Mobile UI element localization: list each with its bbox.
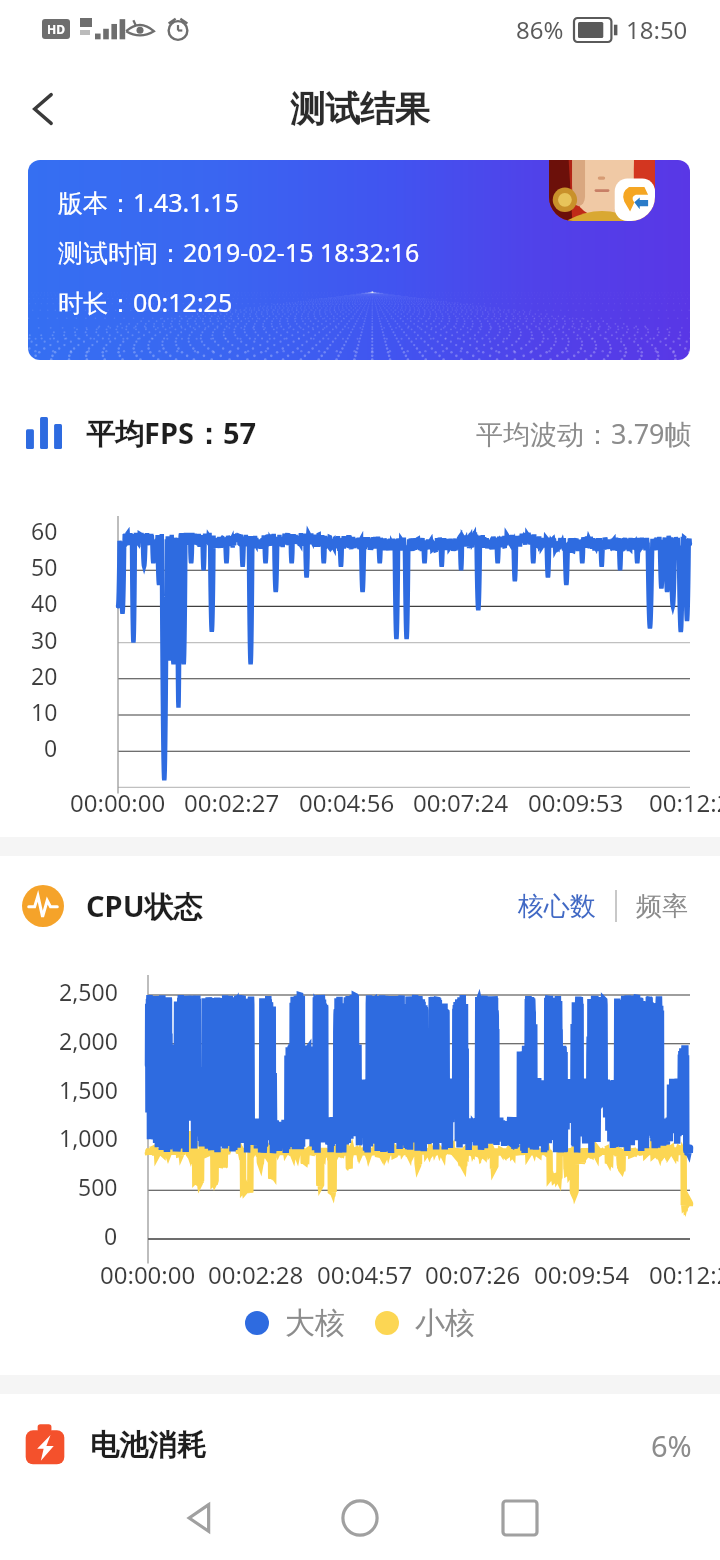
staticText: 0 (44, 732, 58, 763)
staticText: 00:09:54 (534, 1258, 630, 1291)
staticText: 00:02:27 (184, 786, 280, 819)
button[interactable]: Home (320, 1478, 400, 1558)
staticText: 版本：1.43.1.15 (58, 185, 239, 219)
staticText: 测试时间：2019-02-15 18:32:16 (58, 235, 420, 269)
staticText: CPU状态 (86, 886, 203, 926)
staticText: 6% (651, 1426, 692, 1465)
staticText: 20 (31, 660, 58, 691)
staticText: 时长：00:12:25 (58, 285, 233, 319)
staticText: 00:04:57 (317, 1258, 413, 1291)
staticText: 1,500 (59, 1074, 118, 1105)
staticText: 00:12:2 (649, 1258, 720, 1291)
staticText: 0 (104, 1220, 118, 1251)
staticText: 平均波动：3.79帧 (476, 415, 692, 452)
staticText: HD (47, 21, 65, 37)
staticText: 频率 (636, 890, 688, 923)
staticText: 1,000 (59, 1122, 118, 1153)
staticText: 00:09:53 (528, 786, 624, 819)
staticText: 00:12:2 (649, 786, 720, 819)
staticText: 10 (31, 696, 58, 727)
staticText: 小核 (415, 1304, 475, 1342)
staticText: 00:02:28 (208, 1258, 304, 1291)
staticText: 30 (31, 624, 58, 655)
staticText: 核心数 (518, 890, 596, 923)
staticText: 测试结果 (290, 87, 430, 131)
staticText: 电池消耗 (90, 1427, 206, 1464)
button[interactable]: 核心数 (514, 884, 600, 929)
staticText: 50 (31, 551, 58, 582)
button[interactable]: 频率 (632, 884, 692, 929)
staticText: 大核 (285, 1304, 345, 1342)
staticText: 500 (78, 1171, 118, 1202)
button[interactable]: Back (160, 1478, 240, 1558)
staticText: 平均FPS：57 (86, 413, 257, 453)
staticText: 00:00:00 (100, 1258, 196, 1291)
button[interactable]: Back (12, 77, 76, 141)
staticText: 40 (31, 587, 58, 618)
staticText: 00:07:26 (425, 1258, 521, 1291)
button[interactable]: Recents (480, 1478, 560, 1558)
button[interactable]: 电池消耗 (0, 1400, 720, 1490)
staticText: 18:50 (626, 13, 688, 46)
staticText: 2,000 (59, 1025, 118, 1056)
staticText: 60 (31, 515, 58, 546)
staticText: 00:04:56 (299, 786, 395, 819)
staticText: 00:00:00 (70, 786, 166, 819)
staticText: 86% (516, 13, 564, 46)
staticText: 00:07:24 (413, 786, 509, 819)
button[interactable]: 版本：1.43.1.15 (28, 160, 690, 360)
staticText: 2,500 (59, 976, 118, 1007)
